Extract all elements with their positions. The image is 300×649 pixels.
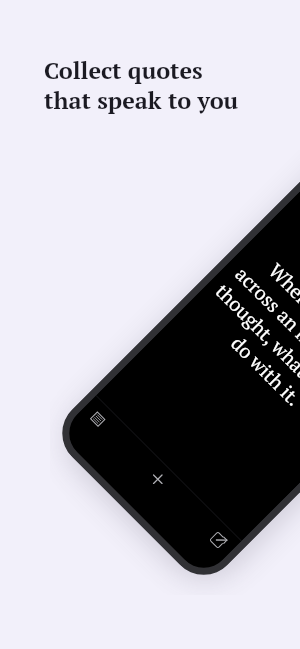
staticText: When you come across an interesting thou… (190, 240, 300, 447)
button[interactable]: Add quote (138, 459, 178, 499)
button[interactable]: Share (198, 519, 238, 559)
button[interactable]: Library (78, 399, 117, 439)
staticText: Collect quotes that speak to you (44, 55, 239, 116)
